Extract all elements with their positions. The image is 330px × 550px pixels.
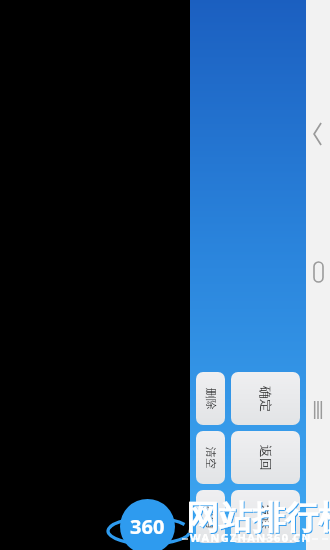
staticText: 网站排行榜 [187,498,330,540]
staticText: 取消 [204,506,218,528]
button[interactable]: 取消 [196,490,225,543]
staticText: 删除 [204,388,218,410]
button[interactable]: 删除 [196,372,225,425]
staticText: 清空 [204,447,218,469]
button[interactable]: 清空 [196,431,225,484]
staticText: 发送 [258,504,274,530]
staticText: 360 [130,513,165,540]
button[interactable]: Back [306,112,330,156]
button[interactable]: Recent apps [306,388,330,432]
staticText: 确定 [258,386,274,412]
staticText: 返回 [258,445,274,471]
staticText: 网站排行榜 [186,497,330,539]
button[interactable]: 返回 [231,431,300,484]
button[interactable]: Home [306,250,330,294]
button[interactable]: 发送 [231,490,300,543]
staticText: WANGZHAN360.CN [190,530,312,545]
button[interactable]: 确定 [231,372,300,425]
